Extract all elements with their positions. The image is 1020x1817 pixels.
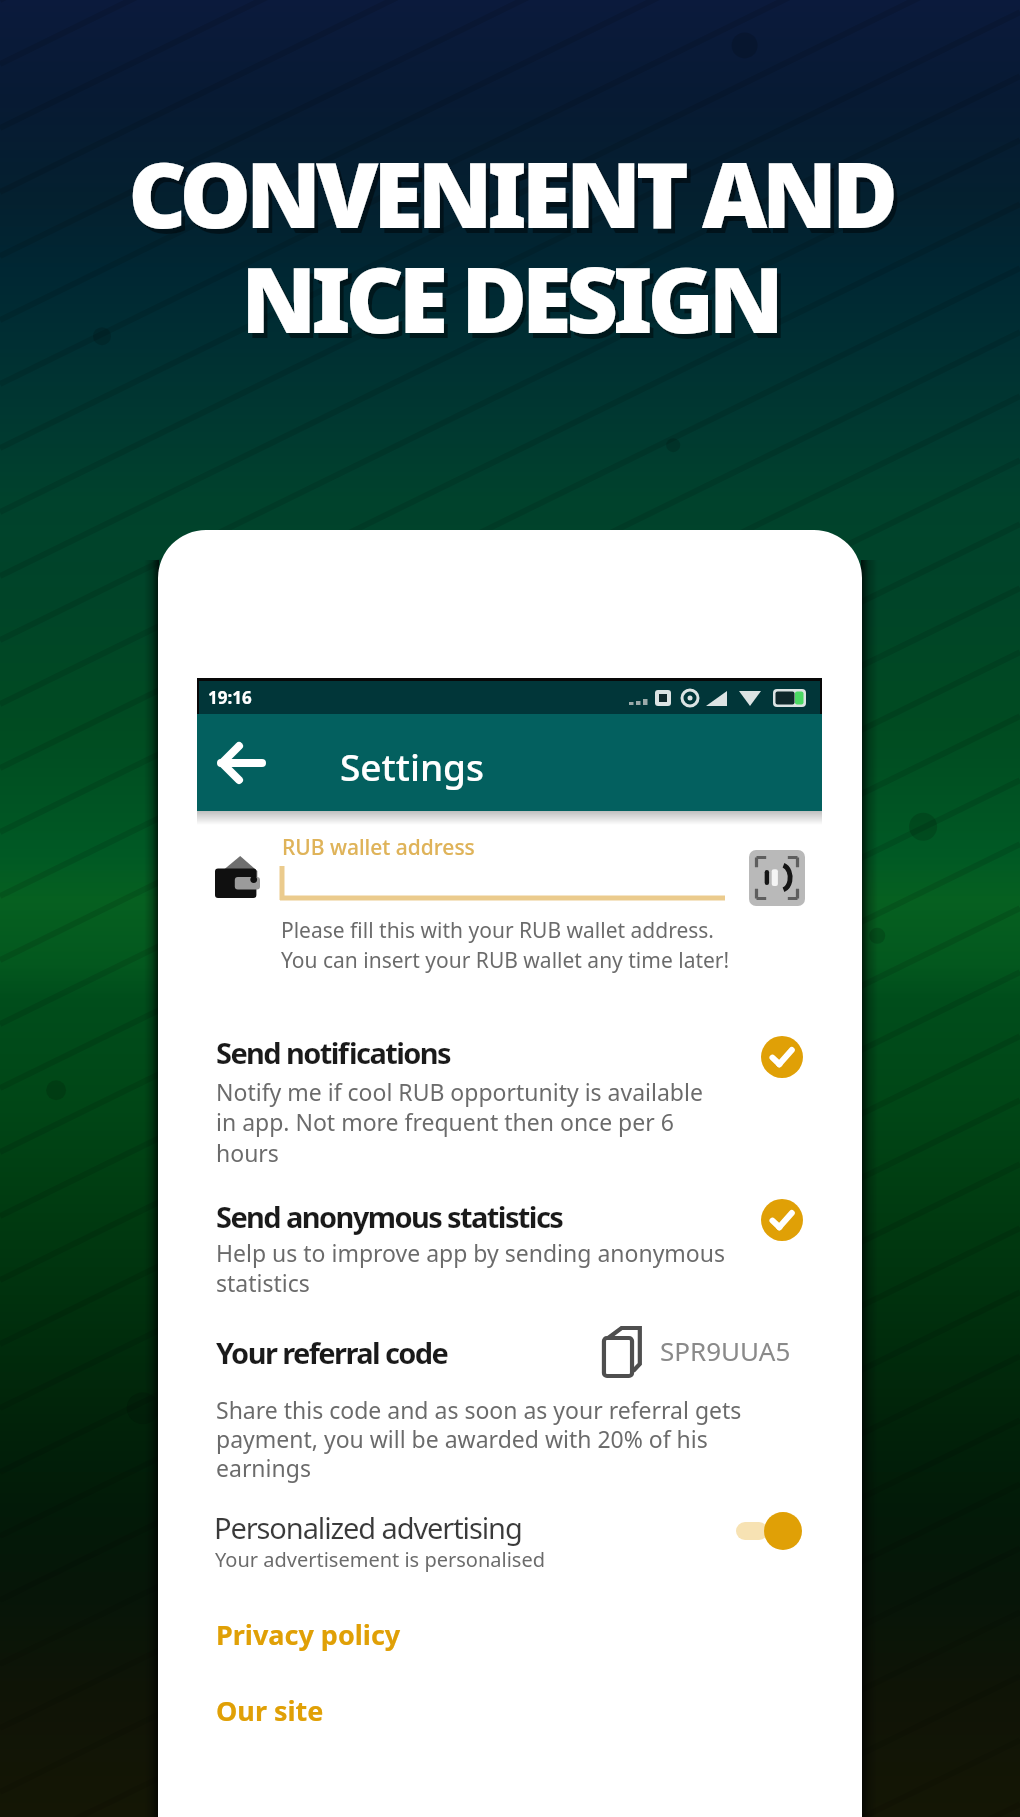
staticText: Help us to improve app by sending anonym… [216, 1237, 746, 1299]
button[interactable]: Back [210, 732, 272, 794]
button[interactable]: Personalized advertising switch [735, 1510, 805, 1552]
staticText: NICE DESIGN [241, 237, 779, 360]
staticText: 19:16 [208, 686, 252, 709]
staticText: Privacy policy [216, 1616, 401, 1653]
button[interactable]: Send notifications checkbox [761, 1036, 803, 1078]
staticText: Personalized advertising [214, 1508, 522, 1547]
button[interactable]: Scan QR code [749, 850, 805, 906]
button[interactable] [197, 1022, 822, 1154]
staticText: RUB wallet address [282, 833, 475, 862]
button[interactable] [197, 1322, 822, 1382]
staticText: Send anonymous statistics [216, 1197, 563, 1236]
staticText: Notify me if cool RUB opportunity is ava… [216, 1076, 718, 1169]
button[interactable] [197, 1186, 822, 1294]
staticText: Please fill this with your RUB wallet ad… [281, 916, 801, 974]
button[interactable]: Copy referral code [597, 1324, 645, 1380]
staticText: CONVENIENT AND [128, 132, 893, 255]
staticText: CONVENIENT AND [132, 137, 897, 260]
staticText: Your referral code [216, 1333, 448, 1372]
staticText: Send notifications [216, 1033, 451, 1072]
button[interactable]: Send anonymous statistics checkbox [761, 1199, 803, 1241]
staticText: NICE DESIGN [245, 242, 783, 365]
button[interactable]: Privacy policy [207, 1610, 417, 1658]
staticText: Settings [340, 741, 485, 791]
staticText: Your advertisement is personalised [215, 1546, 545, 1573]
button[interactable] [197, 1500, 822, 1578]
button[interactable]: Our site [207, 1686, 357, 1734]
staticText: Our site [216, 1692, 324, 1729]
staticText: SPR9UUA5 [660, 1333, 791, 1368]
staticText: Share this code and as soon as your refe… [216, 1394, 764, 1484]
